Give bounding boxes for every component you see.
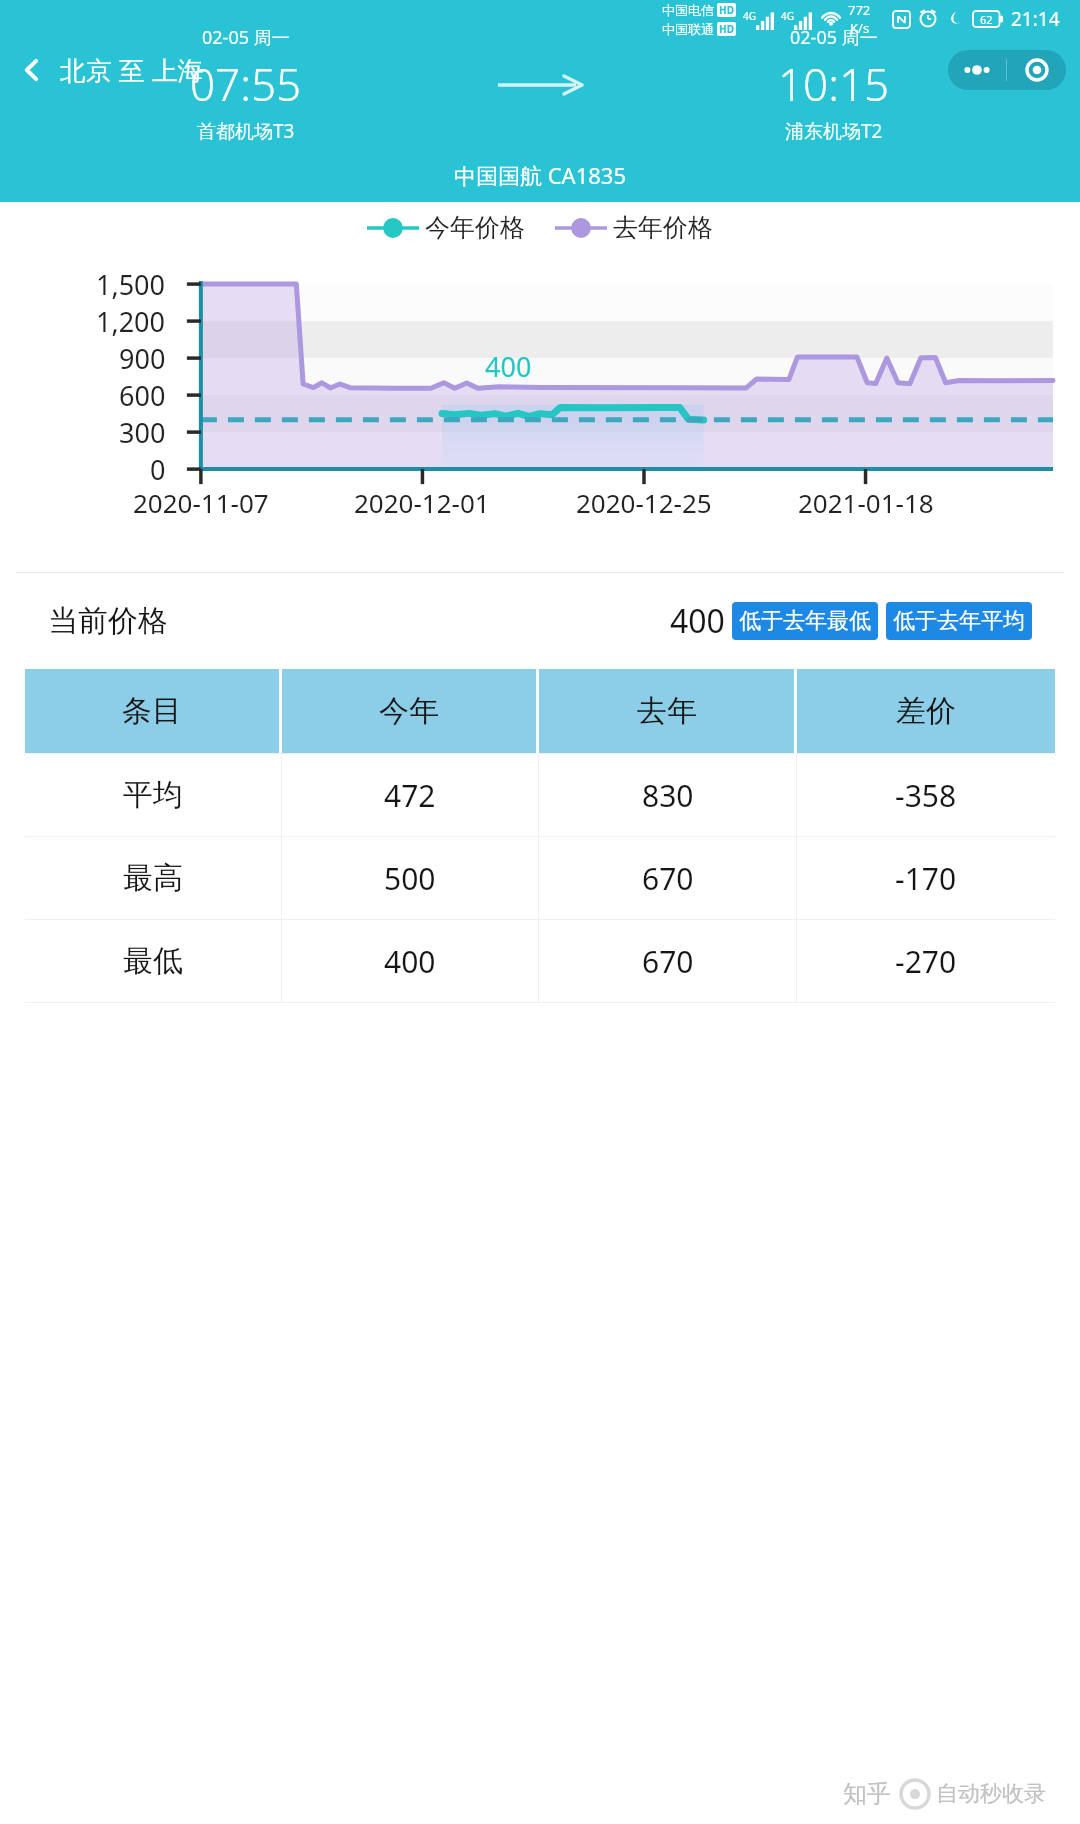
staticText: 最低 xyxy=(123,942,183,980)
staticText: HD xyxy=(719,3,734,17)
staticText: 知乎 xyxy=(843,1779,891,1809)
staticText: 首都机场T3 xyxy=(197,118,295,144)
staticText: 自动秒收录 xyxy=(936,1780,1046,1808)
staticText: 0 xyxy=(150,451,166,487)
staticText: 去年价格 xyxy=(613,212,713,243)
staticText: 400 xyxy=(670,599,725,643)
staticText: 2021-01-18 xyxy=(798,485,934,520)
staticText: 今年 xyxy=(379,692,439,730)
staticText: 2020-12-25 xyxy=(576,485,712,520)
staticText: 02-05 周一 xyxy=(790,25,878,50)
staticText: 中国电信 xyxy=(662,2,714,18)
staticText: 低于去年最低 xyxy=(739,607,871,635)
staticText: 1,500 xyxy=(96,266,166,302)
button[interactable]: 差价 xyxy=(797,669,1055,753)
staticText: 北京 至 上海 xyxy=(60,52,204,88)
staticText: 中国联通 xyxy=(662,21,714,37)
staticText: 02-05 周一 xyxy=(202,25,290,50)
staticText: 670 xyxy=(642,941,694,982)
staticText: 差价 xyxy=(896,692,956,730)
staticText: 830 xyxy=(642,775,694,816)
button[interactable]: 今年 xyxy=(282,669,536,753)
button[interactable]: 条目 xyxy=(25,669,279,753)
staticText: 300 xyxy=(119,414,166,450)
staticText: HD xyxy=(719,22,734,36)
staticText: 当前价格 xyxy=(48,602,168,640)
staticText: -358 xyxy=(895,775,957,816)
button[interactable]: Back xyxy=(8,46,56,94)
staticText: 最高 xyxy=(123,859,183,897)
staticText: K/s xyxy=(850,19,870,37)
staticText: 400 xyxy=(384,941,436,982)
button[interactable]: 低于去年平均 xyxy=(886,602,1032,640)
staticText: 条目 xyxy=(122,692,182,730)
staticText: 400 xyxy=(485,348,532,385)
staticText: 平均 xyxy=(123,776,183,814)
staticText: -170 xyxy=(895,858,957,899)
button[interactable]: 低于去年最低 xyxy=(732,602,878,640)
staticText: 07:55 xyxy=(190,54,302,114)
staticText: 2020-12-01 xyxy=(354,485,490,520)
staticText: 去年 xyxy=(637,692,697,730)
staticText: 中国国航 CA1835 xyxy=(0,160,1080,190)
staticText: -270 xyxy=(895,941,957,982)
staticText: 浦东机场T2 xyxy=(785,118,883,144)
button[interactable]: 去年 xyxy=(539,669,794,753)
staticText: 4G xyxy=(743,9,756,23)
staticText: 670 xyxy=(642,858,694,899)
button[interactable]: More options and close xyxy=(948,50,1066,90)
staticText: 900 xyxy=(119,340,166,376)
staticText: 今年价格 xyxy=(425,212,525,243)
staticText: 600 xyxy=(119,377,166,413)
staticText: 772 xyxy=(848,1,871,19)
staticText: 1,200 xyxy=(96,303,166,339)
staticText: 62 xyxy=(980,12,993,27)
staticText: 4G xyxy=(781,9,794,23)
staticText: 21:14 xyxy=(1011,6,1060,32)
staticText: 2020-11-07 xyxy=(133,485,269,520)
staticText: 10:15 xyxy=(778,54,890,114)
staticText: 500 xyxy=(384,858,436,899)
staticText: 472 xyxy=(384,775,436,816)
staticText: 低于去年平均 xyxy=(893,607,1025,635)
